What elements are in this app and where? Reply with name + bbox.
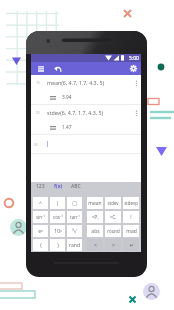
button[interactable]: > xyxy=(105,239,121,251)
button[interactable]: □ xyxy=(67,197,82,209)
button[interactable]: More options xyxy=(132,75,141,90)
staticText: round xyxy=(107,228,120,234)
staticText: ( xyxy=(40,242,42,249)
staticText: eˣ xyxy=(38,228,43,235)
button[interactable]: round xyxy=(105,225,121,237)
button[interactable]: cos⁻¹ xyxy=(50,211,65,223)
staticText: ³√ xyxy=(72,228,77,235)
staticText: ) xyxy=(57,242,59,249)
button[interactable]: abs xyxy=(87,225,103,237)
staticText: f(x) xyxy=(54,183,63,190)
button[interactable]: tan⁻¹ xyxy=(67,211,82,223)
button[interactable]: Menu xyxy=(31,62,50,75)
staticText: mad xyxy=(126,228,137,235)
staticText: □ xyxy=(72,200,77,206)
button[interactable]: 123 xyxy=(31,182,49,191)
staticText: abs xyxy=(91,228,100,235)
button[interactable]: eˣ xyxy=(33,225,48,237)
staticText: 1.47 xyxy=(62,124,72,131)
button[interactable]: 3) xyxy=(31,135,141,153)
staticText: | xyxy=(56,200,59,207)
staticText: ↵ xyxy=(129,242,134,248)
staticText: sin⁻¹ xyxy=(36,214,45,220)
button[interactable]: Undo xyxy=(50,62,65,75)
button[interactable]: mean xyxy=(87,197,103,209)
button[interactable]: mad xyxy=(123,225,139,237)
button[interactable]: < xyxy=(87,239,103,251)
staticText: ⁿPᵣ xyxy=(92,214,99,221)
staticText: 1) xyxy=(36,80,47,85)
staticText: < xyxy=(94,242,97,249)
button[interactable]: rand xyxy=(67,239,82,251)
button[interactable]: sin⁻¹ xyxy=(33,211,48,223)
button[interactable]: More options xyxy=(132,105,141,120)
staticText: cos⁻¹ xyxy=(53,214,63,220)
staticText: stdevp xyxy=(124,200,138,206)
button[interactable]: stdevp xyxy=(123,197,139,209)
button[interactable]: Settings xyxy=(126,62,141,75)
button[interactable]: ⁿPᵣ xyxy=(87,211,103,223)
staticText: tan⁻¹ xyxy=(70,214,80,220)
button[interactable]: f(x) xyxy=(49,182,67,191)
staticText: 2) xyxy=(36,110,47,115)
button[interactable]: ⁿCᵣ xyxy=(105,211,121,223)
staticText: ! xyxy=(130,214,132,221)
staticText: 123 xyxy=(36,183,45,190)
button[interactable]: 1) xyxy=(31,75,141,105)
button[interactable]: | xyxy=(50,197,65,209)
staticText: 3.94 xyxy=(62,94,72,101)
button[interactable]: ³√ xyxy=(67,225,82,237)
staticText: mean(6, 4.7, 1.7, 4.3, 5) xyxy=(47,79,105,86)
staticText: stdev(6, 4.7, 1.7, 4.3, 5) xyxy=(47,109,104,116)
staticText: ABC xyxy=(71,183,81,190)
staticText: rand xyxy=(69,242,80,249)
button[interactable]: ^ xyxy=(33,197,48,209)
staticText: 5:00 xyxy=(129,55,139,62)
staticText: ^ xyxy=(39,200,42,207)
staticText: > xyxy=(112,242,115,249)
button[interactable]: 2) xyxy=(31,105,141,135)
staticText: stdev xyxy=(107,200,119,206)
button[interactable]: ↵ xyxy=(123,239,139,251)
button[interactable]: 10ˣ xyxy=(50,225,65,237)
button[interactable]: ABC xyxy=(67,182,85,191)
staticText: 3) xyxy=(34,142,47,147)
staticText: mean xyxy=(88,200,102,207)
button[interactable]: ( xyxy=(33,239,48,251)
button[interactable]: stdev xyxy=(105,197,121,209)
staticText: ⁿCᵣ xyxy=(110,214,117,221)
button[interactable]: ) xyxy=(50,239,65,251)
button[interactable]: ! xyxy=(123,211,139,223)
staticText: 10ˣ xyxy=(54,228,62,235)
